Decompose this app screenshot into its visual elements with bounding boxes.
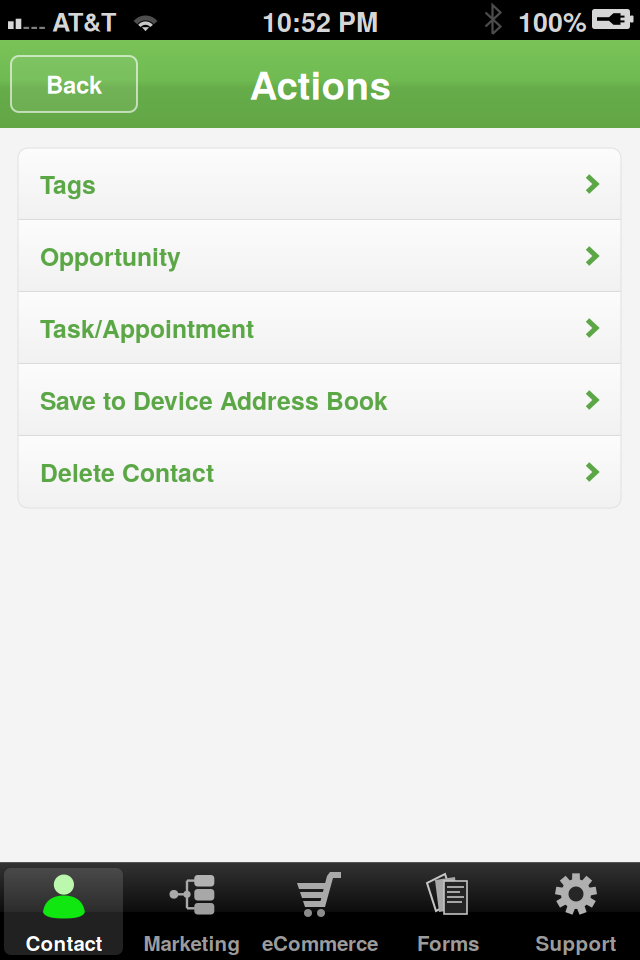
button[interactable]: Tags (18, 148, 621, 220)
button[interactable]: Task/Appointment (18, 292, 621, 364)
staticText: Forms (417, 928, 479, 957)
button[interactable]: Back (11, 56, 137, 112)
button[interactable]: eCommerce (256, 862, 384, 960)
staticText: 100% (518, 2, 587, 40)
staticText: 10:52 PM (262, 2, 378, 40)
staticText: Back (46, 67, 102, 101)
staticText: Marketing (143, 928, 240, 957)
staticText: Task/Appointment (40, 310, 254, 346)
staticText: Opportunity (40, 238, 181, 274)
staticText: Actions (249, 56, 390, 112)
staticText: Save to Device Address Book (40, 382, 388, 418)
button[interactable]: Delete Contact (18, 436, 621, 508)
button[interactable]: Marketing (128, 862, 256, 960)
staticText: Delete Contact (40, 454, 214, 490)
staticText: AT&T (52, 3, 116, 39)
button[interactable]: Contact (0, 862, 128, 960)
button[interactable]: Forms (384, 862, 512, 960)
staticText: Tags (40, 166, 96, 202)
button[interactable]: Opportunity (18, 220, 621, 292)
staticText: Support (535, 928, 616, 957)
staticText: Contact (25, 928, 102, 957)
button[interactable]: Support (512, 862, 640, 960)
staticText: eCommerce (262, 928, 378, 957)
button[interactable]: Save to Device Address Book (18, 364, 621, 436)
